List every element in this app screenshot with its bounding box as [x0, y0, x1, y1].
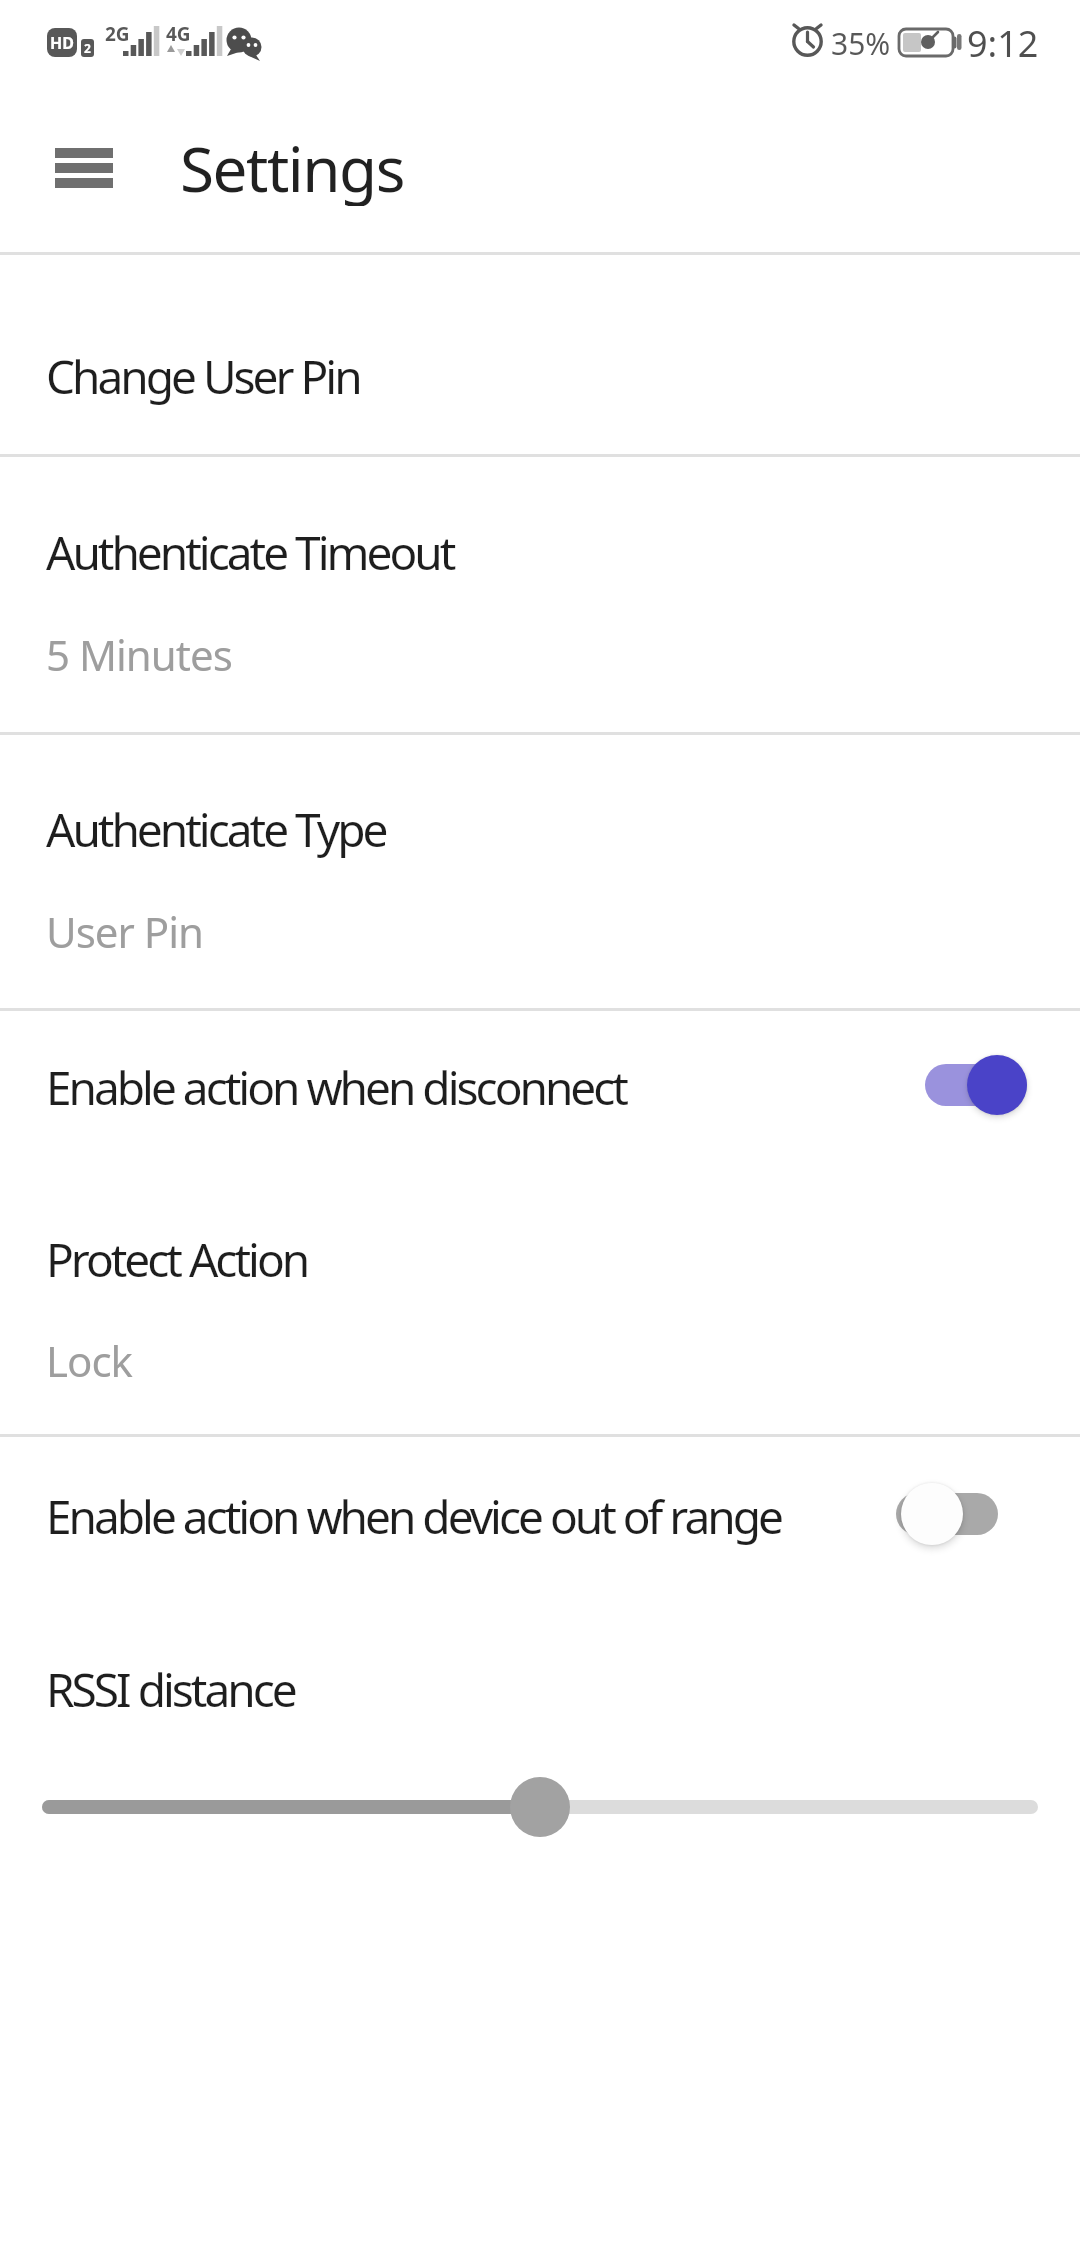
button[interactable]: Enable action when device out of range	[0, 1437, 1080, 1607]
staticText: RSSI distance	[46, 1658, 295, 1721]
button[interactable]	[896, 1493, 998, 1535]
button[interactable]	[510, 1777, 570, 1837]
staticText: 4G	[166, 21, 191, 47]
staticText: 2G	[105, 21, 130, 47]
staticText: 9:12	[967, 19, 1039, 68]
staticText: HD	[50, 32, 74, 54]
staticText: User Pin	[46, 903, 203, 960]
staticText: Enable action when disconnect	[46, 1056, 626, 1119]
staticText: 5 Minutes	[46, 626, 232, 683]
staticText: Protect Action	[46, 1228, 308, 1291]
staticText: Authenticate Timeout	[46, 521, 454, 584]
button[interactable]: Enable action when disconnect	[0, 1011, 1080, 1171]
staticText: Settings	[180, 126, 404, 206]
button[interactable]: Change User Pin	[0, 255, 1080, 454]
staticText: 2	[84, 40, 91, 56]
staticText: Enable action when device out of range	[46, 1485, 781, 1548]
button[interactable]: RSSI distance	[0, 1607, 1080, 1887]
button[interactable]: Authenticate Timeout	[0, 457, 1080, 732]
staticText: Change User Pin	[46, 345, 360, 408]
button[interactable]: Authenticate Type	[0, 735, 1080, 1008]
button[interactable]	[925, 1064, 1027, 1106]
staticText: Lock	[46, 1332, 133, 1389]
button[interactable]	[40, 133, 130, 203]
staticText: Authenticate Type	[46, 798, 386, 861]
button[interactable]: Protect Action	[0, 1171, 1080, 1434]
staticText: 35%	[831, 23, 891, 64]
